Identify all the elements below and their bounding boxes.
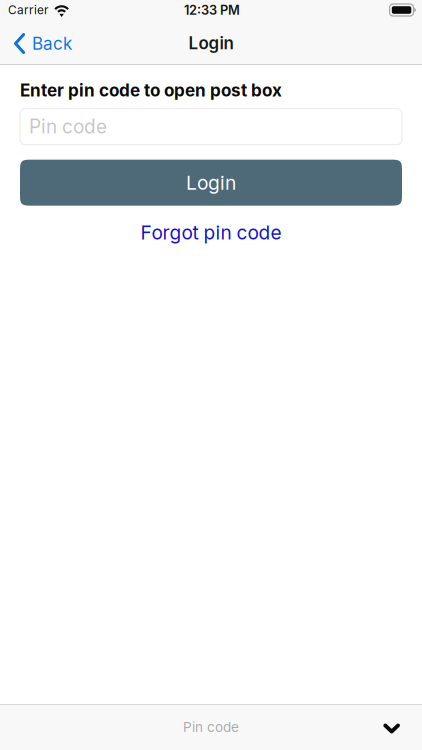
staticText: 12:33 PM (184, 2, 240, 18)
staticText: Enter pin code to open post box (20, 80, 282, 101)
button[interactable]: Forgot pin code (20, 218, 402, 248)
staticText: Login (186, 171, 236, 194)
staticText: Forgot pin code (140, 221, 281, 244)
button[interactable]: Login (20, 160, 402, 206)
staticText: Back (32, 33, 72, 54)
staticText: Pin code (29, 115, 107, 138)
button[interactable]: Back (0, 20, 82, 65)
staticText: Login (188, 33, 233, 53)
button[interactable]: Dismiss keyboard (367, 704, 422, 750)
staticText: Pin code (183, 719, 239, 735)
staticText: Carrier (8, 3, 48, 17)
